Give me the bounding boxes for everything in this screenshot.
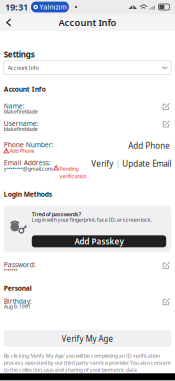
staticText: y••••••••@gmail.com — [4, 165, 53, 172]
staticText: verification — [59, 173, 86, 180]
staticText: Add Phone — [10, 147, 35, 154]
button[interactable]: Update Email — [122, 158, 171, 169]
staticText: Personal — [4, 284, 32, 293]
staticText: Aug 9, 1991 — [4, 303, 31, 310]
button[interactable]: Back — [0, 14, 18, 30]
staticText: Verify — [91, 158, 113, 169]
staticText: Username: — [4, 119, 39, 128]
staticText: Name: — [4, 101, 25, 110]
staticText: Add Passkey — [74, 236, 123, 247]
staticText: ••••••• — [4, 267, 18, 274]
staticText: 19:31 — [5, 1, 28, 13]
button[interactable]: Edit Name: — [161, 101, 171, 110]
staticText: Yalnızım — [39, 3, 66, 11]
staticText: Settings — [4, 49, 35, 60]
button[interactable]: Edit Password: — [161, 260, 171, 269]
staticText: Phone Number: — [4, 140, 54, 149]
button[interactable]: Verify — [91, 158, 113, 169]
staticText: blakefireblade — [4, 125, 38, 132]
staticText: Add Phone — [128, 140, 170, 151]
staticText: Account Info — [4, 85, 46, 93]
staticText: Update Email — [122, 158, 171, 169]
button[interactable]: Add Passkey — [32, 235, 166, 247]
staticText: Login Methods — [4, 190, 52, 199]
staticText: Password: — [4, 260, 36, 269]
button[interactable]: Account Info — [4, 61, 171, 75]
staticText: Log in with your fingerprint, face ID, o… — [32, 216, 152, 223]
staticText: Email Address: — [4, 158, 51, 167]
staticText: blakefireblade — [4, 108, 38, 115]
button[interactable]: Edit Birthday: — [161, 297, 171, 305]
staticText: Birthday: — [4, 297, 32, 305]
staticText: Tired of passwords? — [32, 211, 81, 218]
staticText: Account Info — [58, 16, 116, 29]
staticText: Account Info — [8, 64, 39, 71]
staticText: By clicking 'Verify My Age' you will be … — [4, 352, 171, 373]
button[interactable]: Add Phone — [127, 140, 171, 151]
button[interactable]: Verify My Age — [4, 330, 171, 347]
staticText: Verify My Age — [61, 333, 113, 344]
button[interactable]: Edit Username: — [161, 119, 171, 127]
staticText: Pending — [59, 165, 78, 172]
staticText: | — [116, 158, 120, 169]
